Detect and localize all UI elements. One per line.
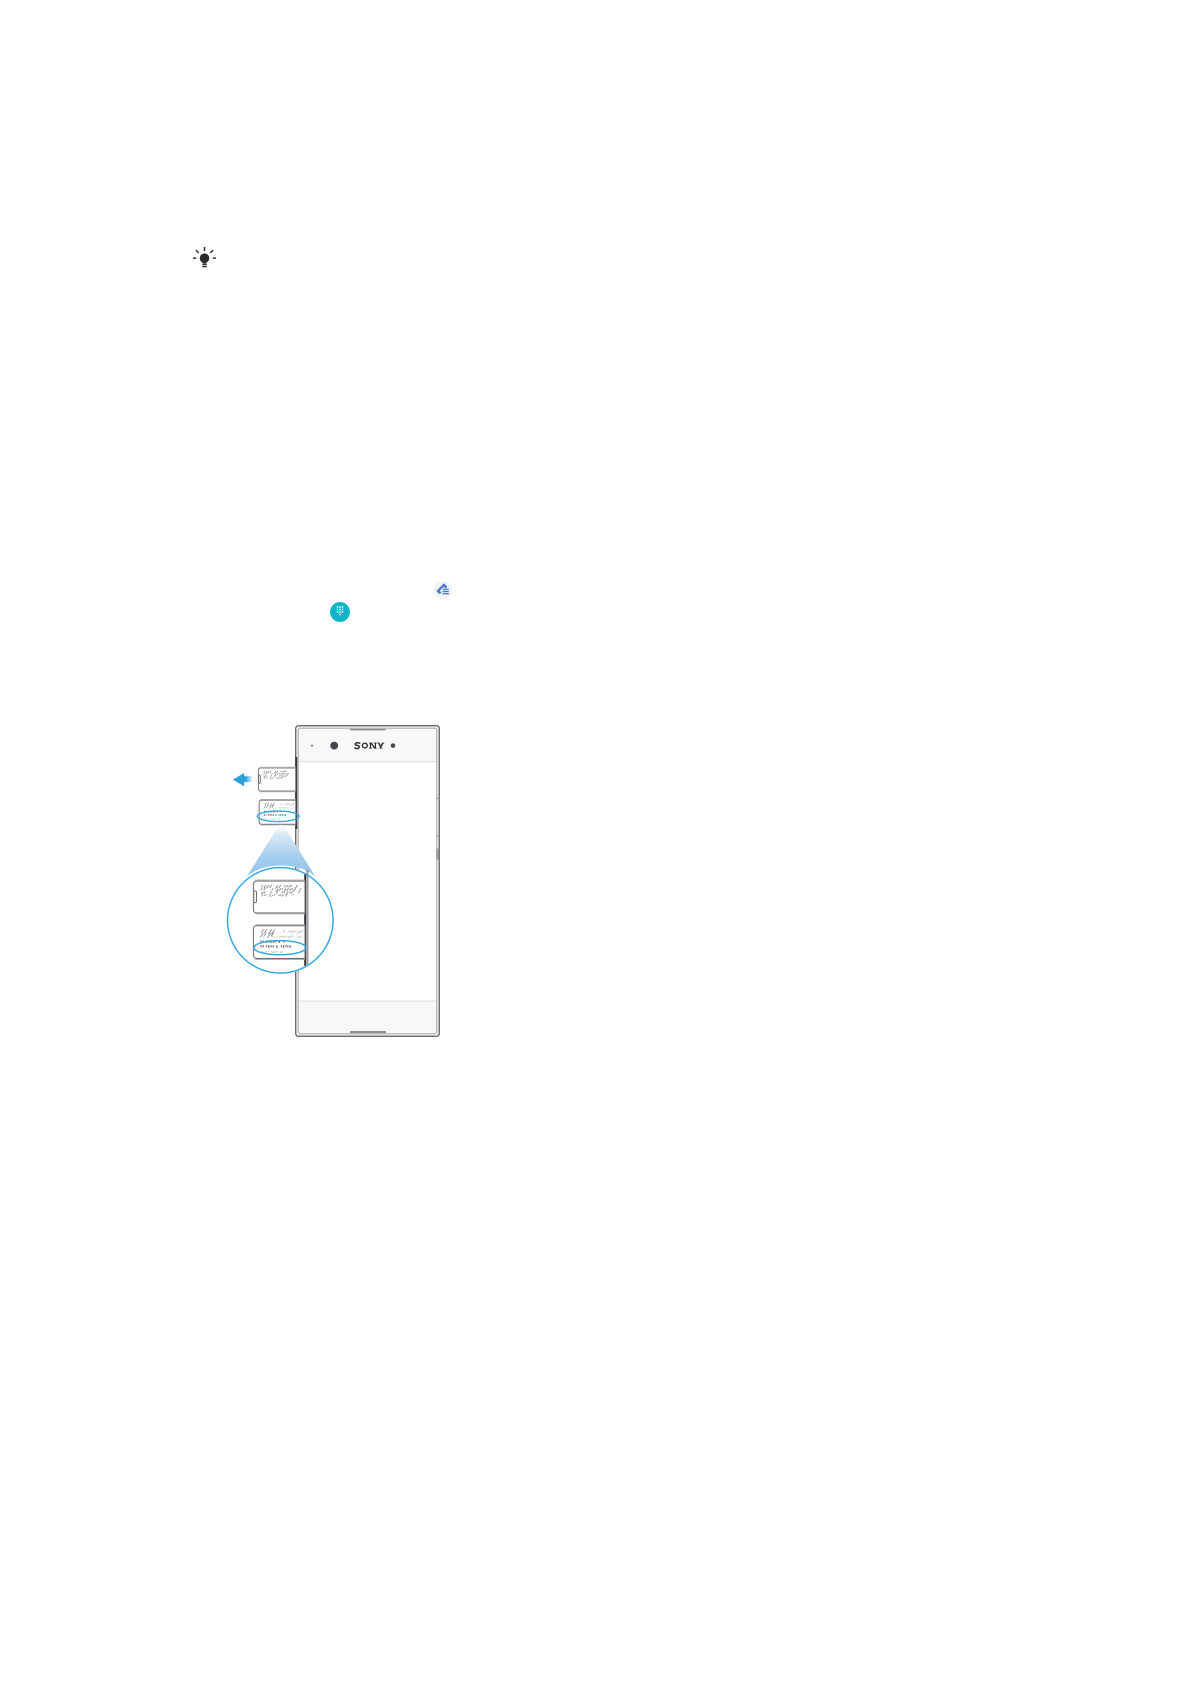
button[interactable]: Call log (434, 581, 452, 599)
button[interactable]: Dialpad (330, 602, 350, 622)
